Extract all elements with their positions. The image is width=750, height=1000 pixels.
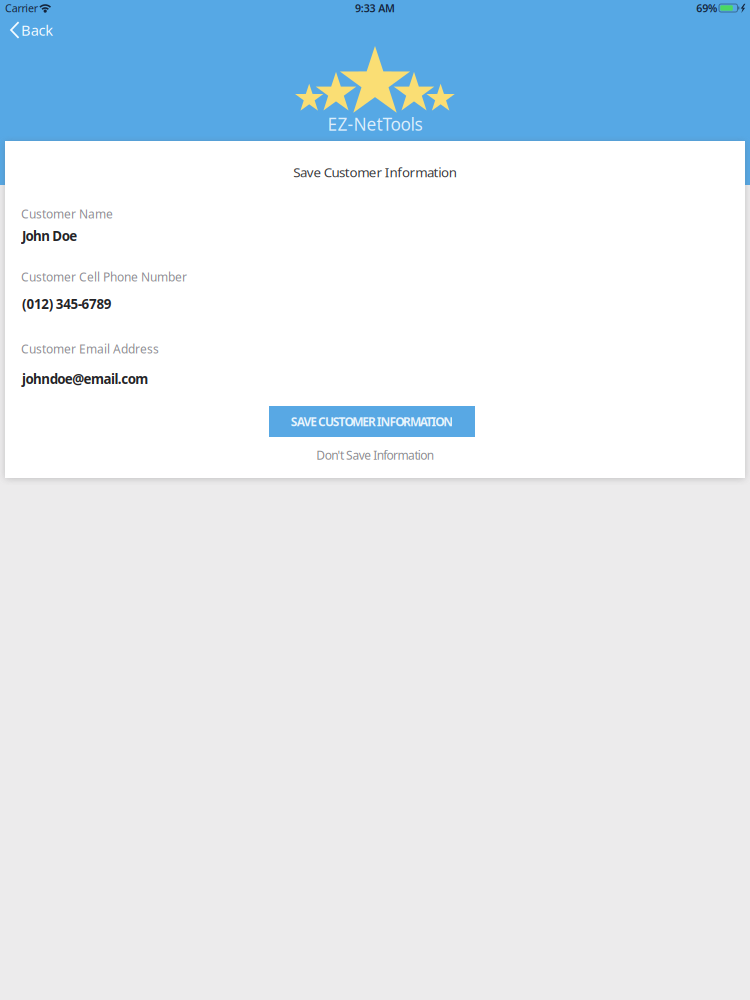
button[interactable]: SAVE CUSTOMER INFORMATION <box>269 406 475 437</box>
staticText: John Doe <box>22 227 77 245</box>
staticText: Save Customer Information <box>293 163 457 181</box>
staticText: Back <box>21 20 53 40</box>
staticText: 69% <box>696 1 717 15</box>
staticText: Customer Email Address <box>21 341 159 357</box>
staticText: Don't Save Information <box>316 447 434 463</box>
staticText: Customer Cell Phone Number <box>21 269 187 285</box>
staticText: 9:33 AM <box>355 1 395 15</box>
staticText: EZ-NetTools <box>327 112 422 135</box>
staticText: johndoe@email.com <box>22 370 148 388</box>
staticText: Carrier <box>5 1 38 15</box>
button[interactable]: Don't Save Information <box>316 446 434 464</box>
staticText: (012) 345-6789 <box>22 295 112 313</box>
staticText: Customer Name <box>21 206 113 222</box>
button[interactable]: Back <box>0 18 86 42</box>
staticText: SAVE CUSTOMER INFORMATION <box>291 413 453 429</box>
